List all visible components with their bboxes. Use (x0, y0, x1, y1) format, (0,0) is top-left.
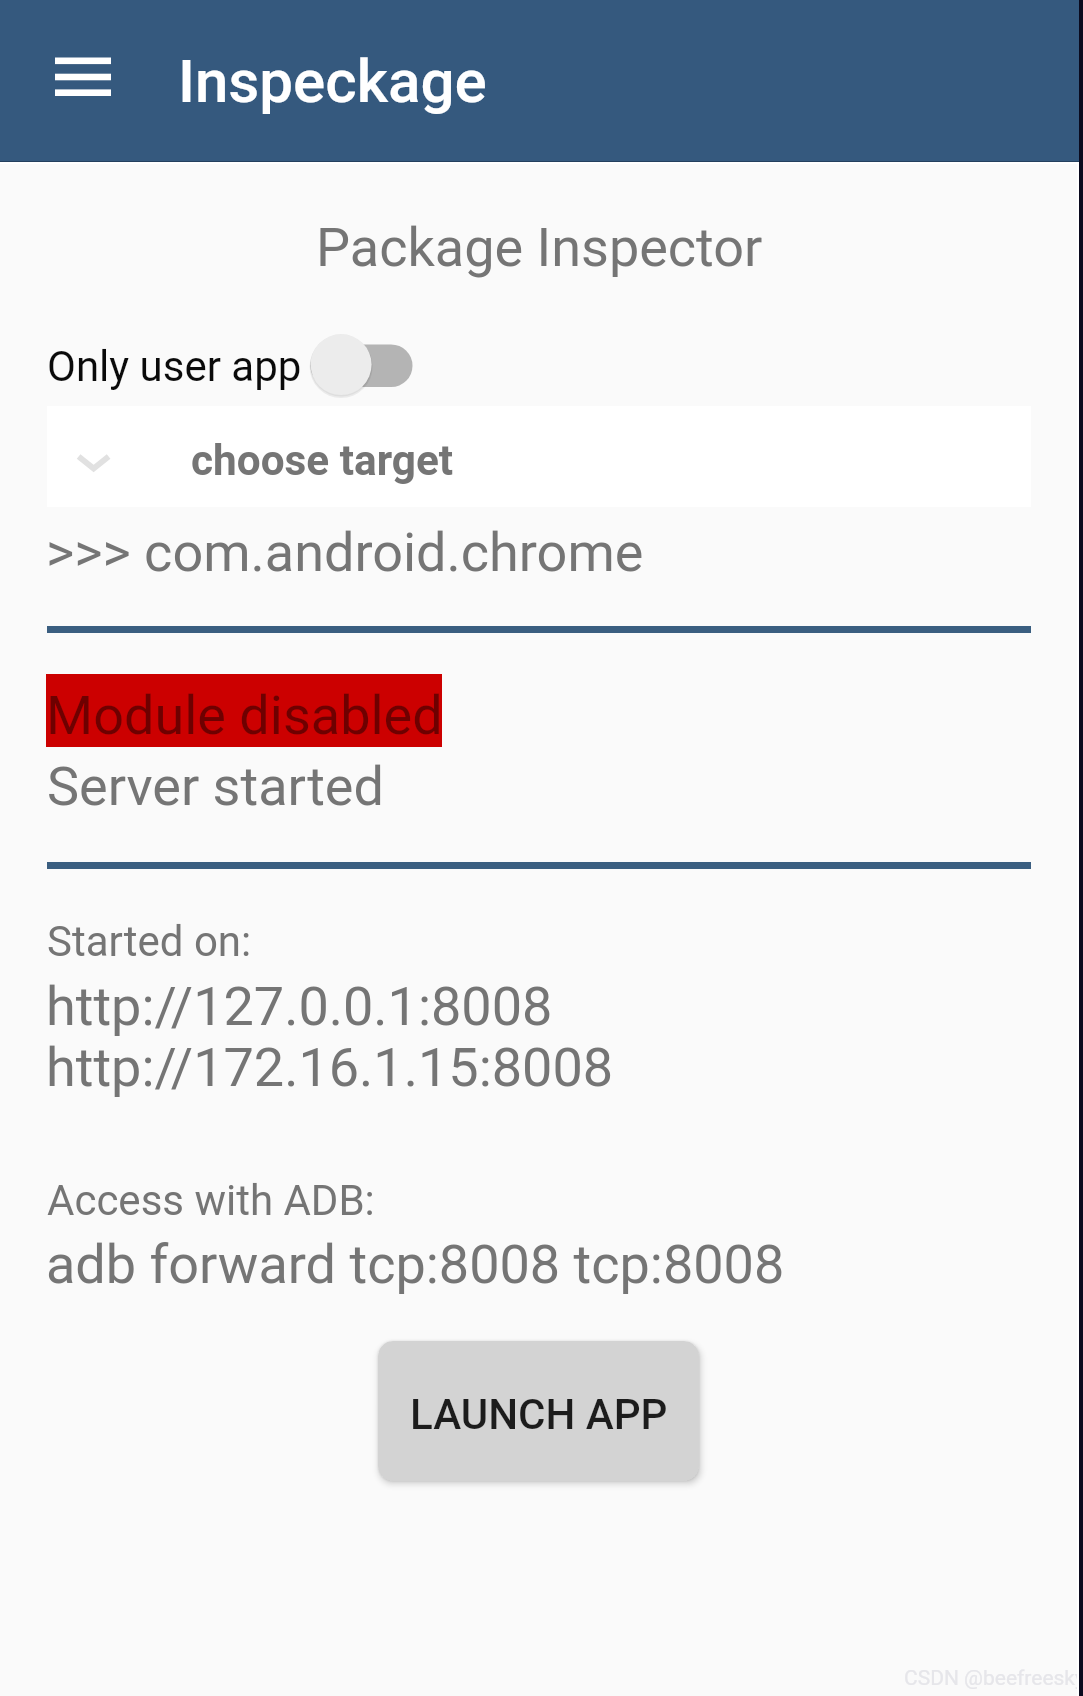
button[interactable]: LAUNCH APP (378, 1341, 699, 1481)
button[interactable]: Open navigation drawer (39, 41, 127, 112)
staticText: adb forward tcp:8008 tcp:8008 (46, 1233, 785, 1296)
button[interactable]: Only user app toggle (300, 328, 420, 400)
staticText: Only user app (47, 342, 302, 391)
staticText: choose target (191, 436, 454, 486)
staticText: Inspeckage (178, 46, 487, 116)
staticText: Server started (47, 755, 384, 818)
staticText: LAUNCH APP (410, 1390, 668, 1439)
staticText: http://127.0.0.1:8008 (46, 975, 553, 1038)
button[interactable]: choose target (47, 406, 1031, 507)
staticText: CSDN @beefreesky (904, 1666, 1083, 1691)
staticText: >>> com.android.chrome (46, 521, 644, 584)
staticText: http://172.16.1.15:8008 (46, 1036, 614, 1099)
staticText: Module disabled (46, 684, 443, 747)
staticText: Access with ADB: (47, 1176, 375, 1225)
staticText: Package Inspector (316, 216, 763, 279)
staticText: Started on: (47, 917, 252, 966)
